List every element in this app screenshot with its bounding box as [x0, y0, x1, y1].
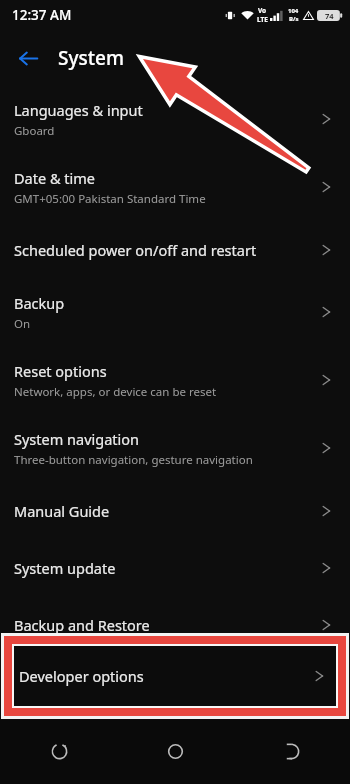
button[interactable]: Reset options [0, 346, 350, 414]
staticText: 12:37 AM [12, 6, 72, 24]
staticText: Developer options [19, 666, 314, 686]
button[interactable]: Date & time [0, 153, 350, 221]
button[interactable]: System update [0, 539, 350, 596]
button[interactable]: Languages & input [0, 85, 350, 153]
staticText: Gboard [14, 123, 55, 139]
staticText: System [58, 45, 124, 71]
staticText: Network, apps, or device can be reset [14, 384, 217, 400]
staticText: Vo [258, 6, 267, 15]
button[interactable]: Manual Guide [0, 482, 350, 539]
button[interactable]: Back [262, 727, 320, 775]
staticText: Backup [14, 293, 65, 313]
button[interactable]: Backup [0, 278, 350, 346]
staticText: Three-button navigation, gesture navigat… [14, 452, 253, 468]
staticText: System update [14, 558, 116, 578]
staticText: Date & time [14, 168, 95, 188]
button[interactable]: Back [10, 40, 46, 76]
staticText: 104 [288, 7, 299, 15]
staticText: System navigation [14, 429, 140, 449]
staticText: GMT+05:00 Pakistan Standard Time [14, 191, 206, 207]
button[interactable]: Backup and Restore [0, 596, 350, 653]
button[interactable]: Developer options [0, 653, 350, 710]
button[interactable]: Home [146, 727, 204, 775]
staticText: Backup and Restore [14, 615, 150, 635]
staticText: Manual Guide [14, 501, 110, 521]
staticText: B/s [289, 15, 299, 23]
staticText: On [14, 316, 31, 332]
staticText: LTE [257, 15, 268, 24]
button[interactable]: Scheduled power on/off and restart [0, 221, 350, 278]
staticText: Reset options [14, 361, 107, 381]
button[interactable]: System navigation [0, 414, 350, 482]
staticText: Scheduled power on/off and restart [14, 240, 257, 260]
staticText: Languages & input [14, 100, 143, 120]
button[interactable]: Recents [30, 727, 88, 775]
staticText: 74 [325, 11, 334, 21]
button[interactable]: Developer options [1, 633, 349, 719]
staticText: Developer options [14, 672, 139, 692]
